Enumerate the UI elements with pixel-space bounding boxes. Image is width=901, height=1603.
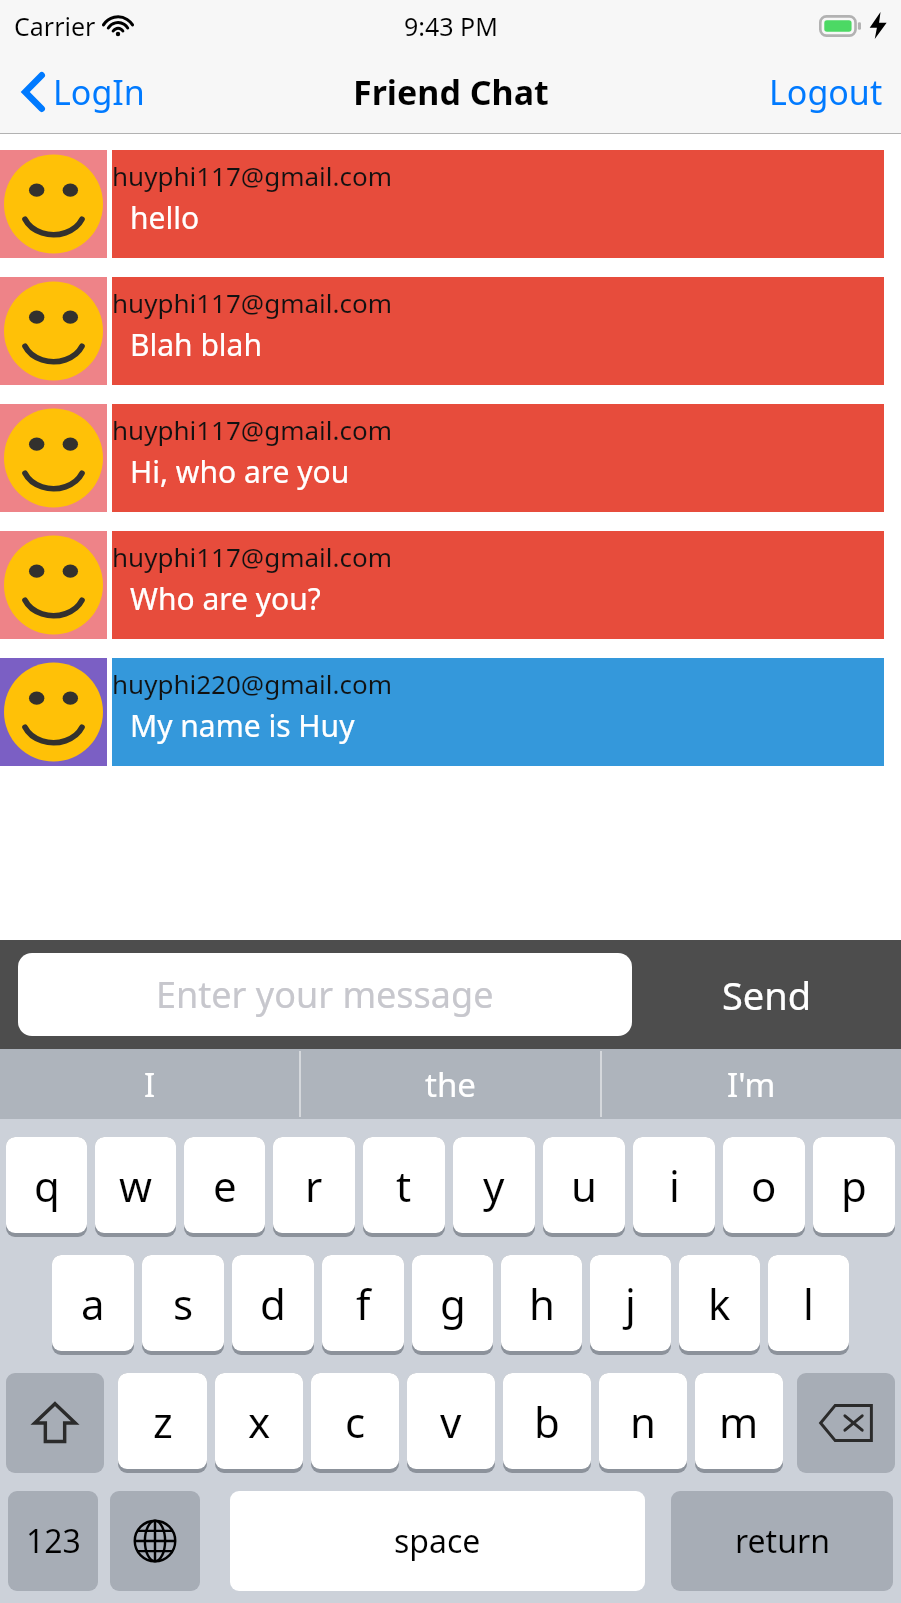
button[interactable]: q (6, 1137, 87, 1233)
staticText: n (630, 1393, 656, 1450)
staticText: y (483, 1157, 505, 1214)
button[interactable]: LogIn (0, 61, 161, 123)
staticText: v (440, 1393, 462, 1450)
staticText: o (751, 1157, 777, 1214)
staticText: e (213, 1157, 237, 1214)
button[interactable]: i (633, 1137, 715, 1233)
staticText: c (345, 1393, 366, 1450)
staticText: huyphi117@gmail.com (112, 412, 392, 447)
button[interactable]: b (503, 1373, 591, 1469)
button[interactable]: u (543, 1137, 625, 1233)
staticText: LogIn (53, 69, 145, 115)
staticText: huyphi220@gmail.com (112, 666, 392, 701)
staticText: h (529, 1275, 555, 1332)
staticText: x (248, 1393, 271, 1450)
button[interactable]: c (311, 1373, 399, 1469)
staticText: l (803, 1275, 814, 1332)
staticText: Logout (769, 69, 883, 115)
staticText: Carrier (14, 9, 96, 43)
button[interactable]: huyphi220@gmail.com (0, 658, 901, 766)
staticText: My name is Huy (130, 705, 355, 746)
button[interactable]: a (52, 1255, 134, 1351)
staticText: huyphi117@gmail.com (112, 539, 392, 574)
staticText: b (534, 1393, 560, 1450)
button[interactable]: d (232, 1255, 314, 1351)
staticText: return (735, 1519, 830, 1563)
staticText: k (708, 1275, 731, 1332)
staticText: huyphi117@gmail.com (112, 285, 392, 320)
button[interactable]: the (301, 1049, 600, 1119)
button[interactable]: Change keyboard language (110, 1491, 200, 1591)
staticText: f (356, 1275, 371, 1332)
button[interactable]: n (599, 1373, 687, 1469)
button[interactable]: Logout (751, 59, 901, 125)
button[interactable]: v (407, 1373, 495, 1469)
staticText: m (719, 1393, 759, 1450)
button[interactable]: y (453, 1137, 535, 1233)
staticText: i (669, 1157, 680, 1214)
staticText: Send (722, 969, 812, 1021)
staticText: Friend Chat (353, 69, 549, 115)
staticText: Enter your message (156, 970, 494, 1019)
button[interactable]: k (679, 1255, 760, 1351)
button[interactable]: w (95, 1137, 176, 1233)
staticText: Blah blah (130, 324, 262, 365)
button[interactable]: l (768, 1255, 849, 1351)
button[interactable]: o (723, 1137, 805, 1233)
button[interactable]: I (0, 1049, 299, 1119)
button[interactable]: huyphi117@gmail.com (0, 277, 901, 385)
button[interactable]: f (322, 1255, 404, 1351)
staticText: I (144, 1062, 156, 1107)
button[interactable]: Enter your message (18, 953, 632, 1036)
button[interactable]: Shift (6, 1373, 104, 1473)
button[interactable]: Send (632, 940, 901, 1049)
staticText: 9:43 PM (404, 9, 498, 43)
staticText: I'm (727, 1062, 776, 1107)
staticText: 123 (26, 1519, 81, 1563)
button[interactable]: g (412, 1255, 493, 1351)
button[interactable]: j (590, 1255, 671, 1351)
button[interactable]: huyphi117@gmail.com (0, 531, 901, 639)
staticText: Who are you? (130, 578, 321, 619)
button[interactable]: m (695, 1373, 783, 1469)
staticText: t (396, 1157, 412, 1214)
button[interactable]: e (184, 1137, 265, 1233)
button[interactable]: huyphi117@gmail.com (0, 150, 901, 258)
staticText: Hi, who are you (130, 451, 350, 492)
staticText: space (394, 1519, 481, 1563)
button[interactable]: z (118, 1373, 207, 1469)
staticText: a (81, 1275, 105, 1332)
button[interactable]: t (363, 1137, 445, 1233)
button[interactable]: huyphi117@gmail.com (0, 404, 901, 512)
button[interactable]: p (813, 1137, 895, 1233)
button[interactable]: I'm (602, 1049, 901, 1119)
button[interactable]: h (501, 1255, 582, 1351)
staticText: r (305, 1157, 323, 1214)
staticText: huyphi117@gmail.com (112, 158, 392, 193)
button[interactable]: 123 (8, 1491, 98, 1591)
button[interactable]: Delete (797, 1373, 895, 1473)
button[interactable]: s (142, 1255, 224, 1351)
staticText: s (173, 1275, 194, 1332)
staticText: d (260, 1275, 286, 1332)
button[interactable]: return (671, 1491, 893, 1591)
button[interactable]: space (230, 1491, 645, 1591)
staticText: hello (130, 197, 200, 238)
staticText: q (34, 1157, 60, 1214)
staticText: the (425, 1062, 476, 1107)
button[interactable]: r (273, 1137, 355, 1233)
staticText: g (440, 1275, 466, 1332)
staticText: j (625, 1275, 636, 1332)
button[interactable]: x (215, 1373, 303, 1469)
staticText: z (153, 1393, 173, 1450)
staticText: u (571, 1157, 597, 1214)
staticText: p (841, 1157, 867, 1214)
staticText: w (119, 1157, 153, 1214)
